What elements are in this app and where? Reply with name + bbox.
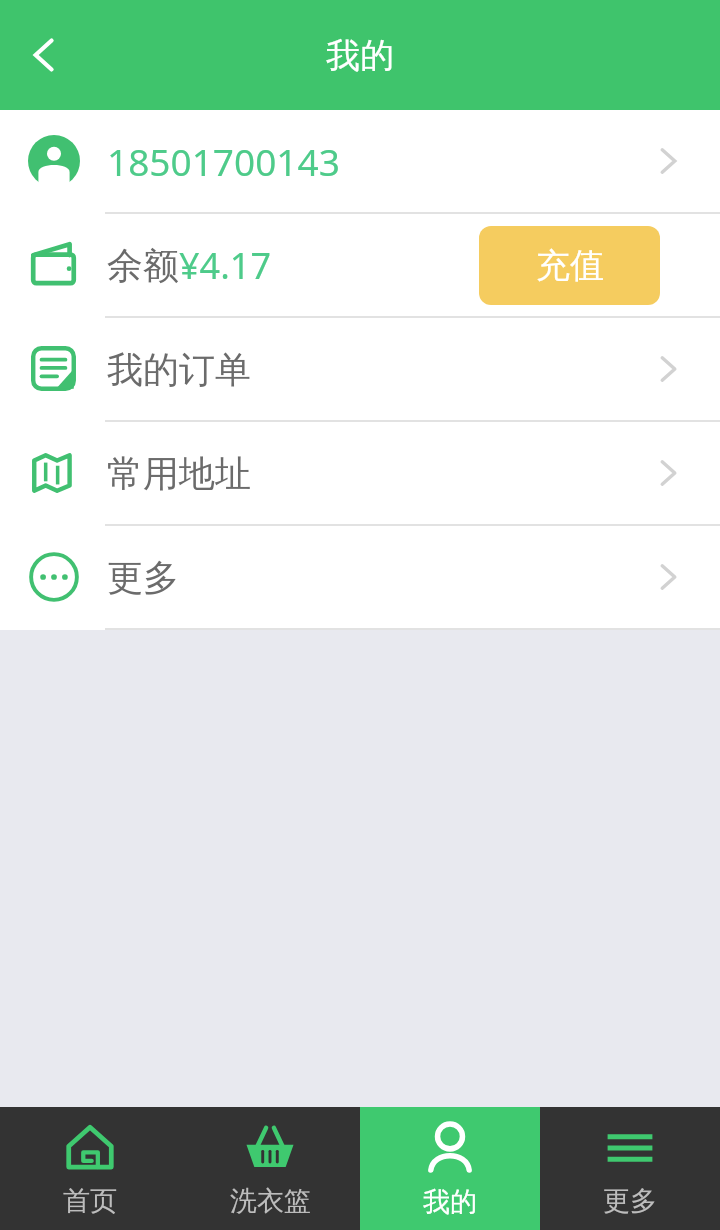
staticText: ¥4.17	[179, 241, 272, 290]
button[interactable]: 18501700143	[0, 110, 720, 212]
staticText: 首页	[63, 1184, 117, 1218]
button[interactable]: 更多	[0, 526, 720, 628]
button[interactable]: 更多	[540, 1107, 720, 1230]
staticText: 余额	[107, 243, 179, 288]
button[interactable]: Back	[6, 17, 82, 93]
staticText: 充值	[536, 244, 604, 287]
button[interactable]: 我的订单	[0, 318, 720, 420]
button[interactable]: 洗衣篮	[180, 1107, 360, 1230]
staticText: 更多	[107, 555, 179, 600]
button[interactable]: 首页	[0, 1107, 180, 1230]
button[interactable]: 余额	[0, 214, 720, 316]
button[interactable]: 我的	[360, 1107, 540, 1230]
staticText: 我的订单	[107, 347, 251, 392]
staticText: 我的	[423, 1185, 477, 1219]
staticText: 常用地址	[107, 451, 251, 496]
staticText: 洗衣篮	[230, 1184, 311, 1218]
staticText: 更多	[603, 1184, 657, 1218]
staticText: 18501700143	[107, 136, 340, 186]
staticText: 我的	[326, 34, 394, 77]
button[interactable]: 常用地址	[0, 422, 720, 524]
button[interactable]: 充值	[479, 226, 660, 305]
